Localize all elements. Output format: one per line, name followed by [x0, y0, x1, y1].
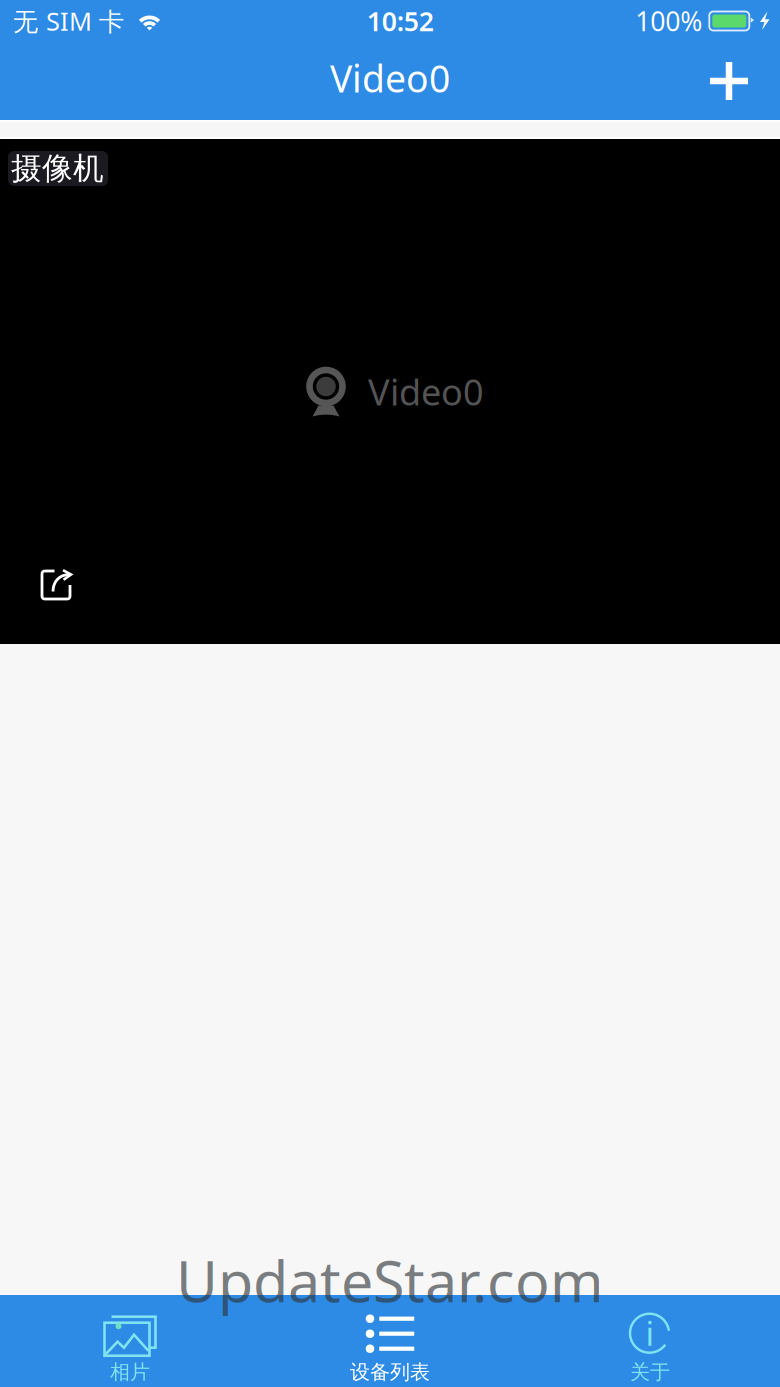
staticText: 关于	[630, 1360, 670, 1384]
staticText: UpdateStar.com	[176, 1242, 604, 1318]
button[interactable]: Add	[701, 59, 757, 103]
button[interactable]: Share	[0, 555, 91, 616]
staticText: 相片	[110, 1360, 150, 1384]
staticText: 设备列表	[350, 1360, 430, 1384]
staticText: 无 SIM 卡	[13, 4, 124, 38]
button[interactable]: 设备列表	[260, 1296, 520, 1386]
button[interactable]: i	[520, 1296, 780, 1386]
staticText: 10:52	[367, 3, 434, 39]
staticText: i	[645, 1311, 654, 1355]
staticText: Video0	[368, 368, 484, 415]
staticText: Video0	[330, 53, 450, 103]
staticText: 摄像机	[11, 150, 104, 187]
button[interactable]: 相片	[0, 1296, 260, 1386]
staticText: 100%	[635, 3, 702, 39]
